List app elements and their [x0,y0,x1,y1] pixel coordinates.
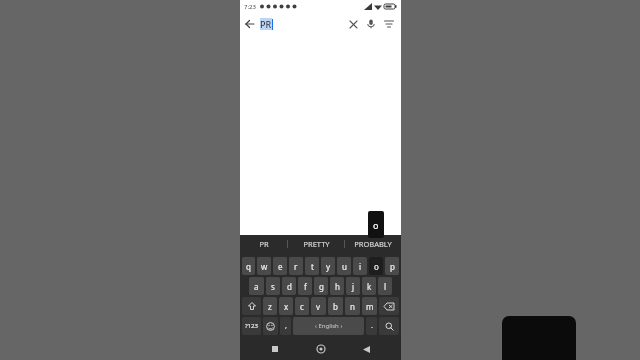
staticText: PRETTY [303,239,330,249]
staticText: l [384,281,387,292]
staticText: x [284,301,289,312]
button[interactable]: Home [310,338,332,360]
button[interactable]: w [257,257,271,275]
staticText: a [254,281,259,292]
staticText: r [294,261,298,272]
staticText: k [367,281,372,292]
button[interactable]: m [362,297,377,315]
button[interactable]: k [362,277,376,295]
staticText: o [374,261,379,272]
button[interactable]: , [280,317,291,335]
button[interactable]: Recents [264,338,286,360]
staticText: u [342,261,347,272]
button[interactable]: PR [260,13,344,35]
staticText: . [371,321,373,331]
button[interactable]: PROBABLY [345,235,401,252]
staticText: w [261,261,268,272]
button[interactable]: p [385,257,399,275]
button[interactable]: Back [240,14,260,34]
button[interactable]: e [273,257,287,275]
staticText: g [319,281,324,292]
button[interactable]: PRETTY [288,235,344,252]
staticText: t [311,261,314,272]
button[interactable]: . [366,317,377,335]
staticText: v [316,301,321,312]
staticText: f [304,281,307,292]
staticText: j [352,281,355,292]
staticText: s [271,281,275,292]
staticText: PR [259,239,269,249]
button[interactable]: Clear [344,13,362,35]
button[interactable]: o [369,257,383,275]
button[interactable]: d [282,277,296,295]
staticText: h [335,281,340,292]
button[interactable]: y [321,257,335,275]
staticText: p [390,261,395,272]
button[interactable]: Back [355,338,377,360]
button[interactable]: g [314,277,328,295]
staticText: z [268,301,272,312]
staticText: y [326,261,331,272]
staticText: 7:23 [244,3,256,11]
staticText: ‹ English › [315,322,343,330]
button[interactable]: Voice search [362,13,380,35]
button[interactable]: Filter [380,13,398,35]
staticText: o [373,219,379,231]
button[interactable]: ?123 [242,317,261,335]
staticText: PROBABLY [354,239,392,249]
staticText: c [300,301,304,312]
button[interactable]: u [337,257,351,275]
button[interactable]: r [289,257,303,275]
button[interactable]: v [311,297,326,315]
button[interactable]: j [346,277,360,295]
button[interactable]: Search [379,317,399,335]
button[interactable]: h [330,277,344,295]
button[interactable]: a [249,277,264,295]
button[interactable]: z [263,297,277,315]
staticText: , [285,321,287,331]
button[interactable]: c [295,297,309,315]
button[interactable]: s [266,277,280,295]
button[interactable]: PR [240,235,287,252]
button[interactable]: b [328,297,343,315]
staticText: b [333,301,338,312]
button[interactable]: Backspace [379,297,399,315]
button[interactable]: q [242,257,255,275]
staticText: m [366,301,374,312]
button[interactable]: t [305,257,319,275]
button[interactable]: l [378,277,392,295]
staticText: PR [260,18,272,30]
button[interactable]: Shift [242,297,261,315]
button[interactable]: i [353,257,367,275]
staticText: i [359,261,362,272]
button[interactable]: f [298,277,312,295]
staticText: ?123 [245,322,258,330]
button[interactable]: n [345,297,360,315]
staticText: n [350,301,355,312]
button[interactable]: x [279,297,293,315]
staticText: q [246,261,251,272]
staticText: e [278,261,283,272]
staticText: d [287,281,292,292]
button[interactable]: Emoji [263,317,278,335]
button[interactable]: ‹ English › [293,317,364,335]
